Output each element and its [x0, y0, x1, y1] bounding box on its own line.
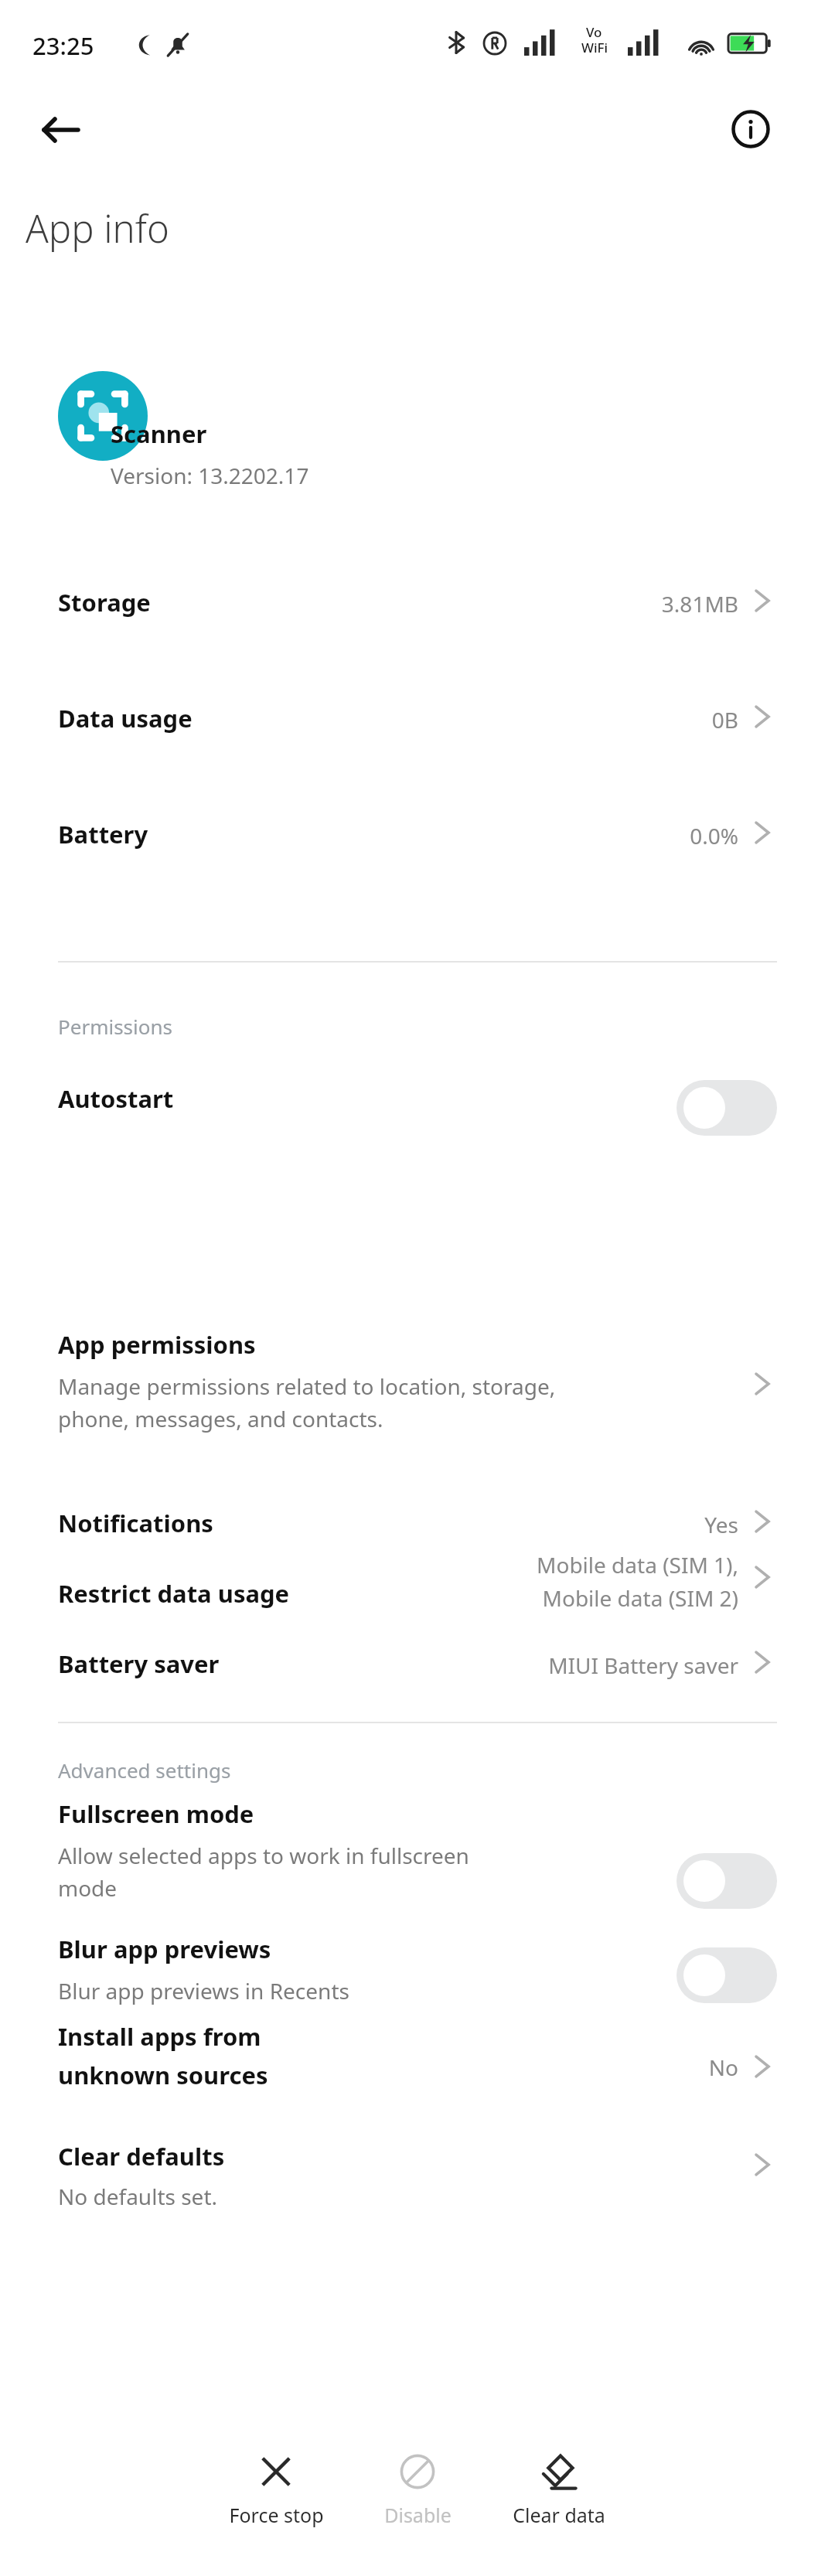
button[interactable]: Clear defaults: [0, 2126, 835, 2234]
staticText: Advanced settings: [58, 1757, 231, 1784]
button[interactable]: Battery saver: [0, 1604, 835, 1720]
staticText: Version: 13.2202.17: [111, 461, 309, 490]
button[interactable]: Force stop: [206, 2449, 346, 2550]
staticText: Clear defaults: [58, 2140, 225, 2172]
staticText: WiFi: [581, 39, 608, 56]
button[interactable]: Toggle: [677, 1947, 777, 2003]
staticText: No defaults set.: [58, 2182, 217, 2211]
staticText: Battery saver: [58, 1647, 220, 1680]
staticText: Yes: [0, 1510, 738, 1539]
staticText: No: [708, 2053, 738, 2082]
staticText: unknown sources: [58, 2059, 268, 2091]
staticText: Allow selected apps to work in fullscree…: [58, 1841, 469, 1870]
staticText: 23:25: [32, 29, 94, 62]
staticText: Scanner: [111, 417, 207, 450]
button[interactable]: Blur app previews: [0, 1921, 835, 2022]
staticText: Vo: [586, 23, 602, 41]
staticText: Blur app previews: [58, 1933, 271, 1965]
staticText: mode: [58, 1873, 118, 1903]
button[interactable]: Storage: [0, 543, 835, 659]
staticText: Notifications: [58, 1507, 213, 1539]
button[interactable]: Back: [32, 102, 88, 158]
button[interactable]: Autostart: [0, 1048, 835, 1148]
button[interactable]: App permissions: [0, 1297, 835, 1444]
button[interactable]: Battery: [0, 775, 835, 891]
staticText: 0.0%: [0, 821, 738, 850]
button[interactable]: About app: [722, 101, 779, 158]
staticText: App info: [26, 203, 169, 254]
button[interactable]: Fullscreen mode: [0, 1770, 835, 1910]
staticText: Battery: [58, 818, 148, 850]
staticText: Manage permissions related to location, …: [58, 1371, 556, 1401]
button[interactable]: Toggle: [677, 1080, 777, 1136]
staticText: 0B: [0, 705, 738, 734]
button[interactable]: Toggle: [677, 1853, 777, 1909]
staticText: Install apps from: [58, 2020, 261, 2053]
staticText: Mobile data (SIM 1),: [537, 1550, 738, 1579]
staticText: Blur app previews in Recents: [58, 1976, 349, 2005]
staticText: MIUI Battery saver: [0, 1651, 738, 1680]
staticText: Fullscreen mode: [58, 1797, 254, 1830]
staticText: 3.81MB: [0, 589, 738, 618]
button[interactable]: Disable: [348, 2449, 487, 2550]
staticText: phone, messages, and contacts.: [58, 1404, 383, 1433]
staticText: Restrict data usage: [58, 1577, 290, 1610]
staticText: Force stop: [229, 2502, 324, 2528]
staticText: Disable: [384, 2502, 452, 2528]
staticText: Permissions: [58, 1013, 173, 1040]
button[interactable]: Clear data: [489, 2449, 629, 2550]
staticText: Storage: [58, 586, 151, 618]
staticText: App permissions: [58, 1328, 256, 1361]
staticText: Data usage: [58, 702, 193, 734]
button[interactable]: Notifications: [0, 1463, 835, 1579]
button[interactable]: Install apps from unknown sources: [0, 2010, 835, 2126]
staticText: Clear data: [513, 2502, 605, 2528]
button[interactable]: Data usage: [0, 659, 835, 775]
staticText: Mobile data (SIM 2): [542, 1583, 738, 1613]
staticText: Autostart: [58, 1082, 174, 1115]
